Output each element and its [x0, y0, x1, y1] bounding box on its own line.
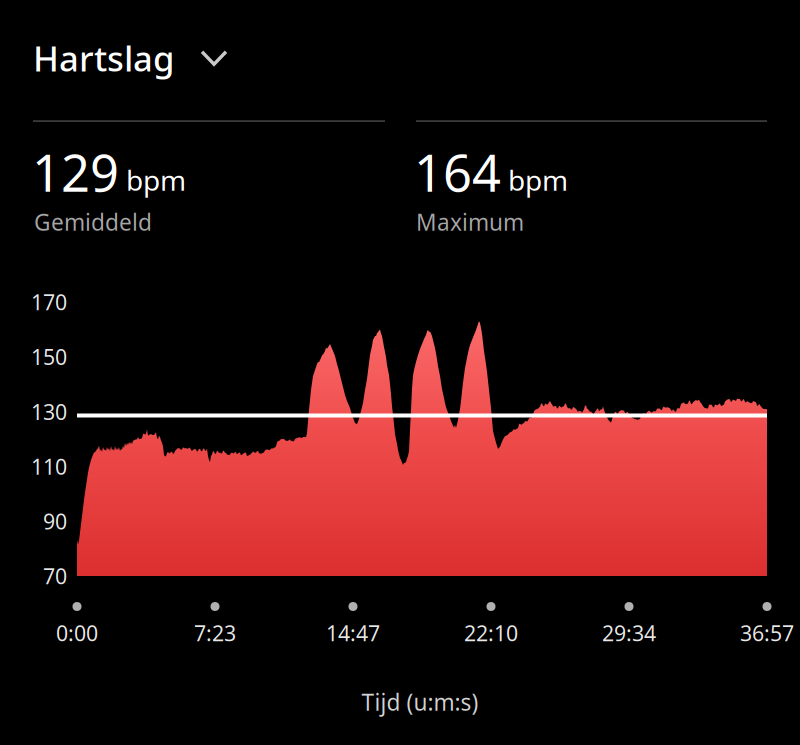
- staticText: Maximum: [416, 207, 524, 237]
- staticText: 14:47: [326, 619, 380, 647]
- staticText: Gemiddeld: [34, 207, 152, 237]
- staticText: bpm: [508, 161, 568, 199]
- staticText: 90: [43, 507, 67, 535]
- staticText: bpm: [126, 161, 186, 199]
- staticText: 22:10: [464, 619, 518, 647]
- staticText: 164: [414, 138, 501, 206]
- staticText: 29:34: [602, 619, 656, 647]
- staticText: 129: [32, 138, 119, 206]
- staticText: 150: [31, 343, 67, 371]
- staticText: 170: [31, 288, 67, 316]
- button[interactable]: Hartslag: [33, 30, 363, 86]
- staticText: 36:57: [740, 619, 794, 647]
- staticText: 110: [31, 452, 67, 480]
- staticText: 7:23: [194, 619, 236, 647]
- staticText: 0:00: [56, 619, 98, 647]
- staticText: Tijd (u:m:s): [361, 687, 478, 717]
- staticText: 70: [43, 562, 67, 590]
- staticText: Hartslag: [33, 35, 174, 81]
- staticText: 130: [31, 397, 67, 426]
